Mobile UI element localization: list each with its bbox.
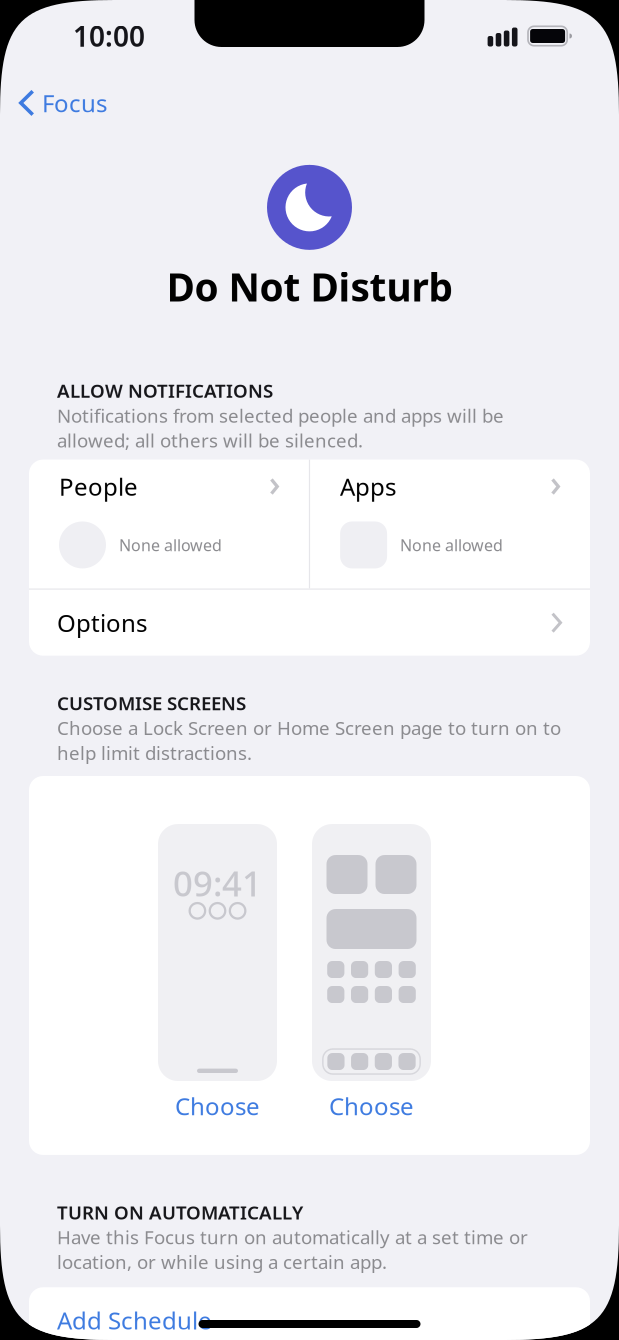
staticText: Choose bbox=[329, 1090, 414, 1122]
staticText: Options bbox=[57, 607, 147, 639]
staticText: Choose a Lock Screen or Home Screen page… bbox=[57, 715, 561, 765]
staticText: 10:00 bbox=[73, 17, 145, 55]
staticText: Notifications from selected people and a… bbox=[57, 403, 504, 453]
button[interactable]: Options bbox=[29, 590, 590, 656]
staticText: None allowed bbox=[400, 534, 503, 555]
staticText: None allowed bbox=[119, 534, 222, 555]
staticText: Apps bbox=[340, 471, 396, 502]
staticText: People bbox=[59, 471, 138, 502]
staticText: Have this Focus turn on automatically at… bbox=[57, 1225, 528, 1274]
button[interactable]: Choose bbox=[329, 1090, 414, 1122]
button[interactable]: People bbox=[29, 460, 309, 588]
staticText: Focus bbox=[42, 87, 107, 119]
staticText: 09:41 bbox=[173, 860, 262, 906]
button[interactable]: Choose bbox=[175, 1090, 260, 1122]
staticText: Choose bbox=[175, 1090, 260, 1122]
staticText: Add Schedule bbox=[57, 1304, 212, 1336]
staticText: ALLOW NOTIFICATIONS bbox=[57, 378, 273, 403]
staticText: Do Not Disturb bbox=[166, 261, 452, 312]
button[interactable]: Apps bbox=[310, 460, 590, 588]
staticText: CUSTOMISE SCREENS bbox=[57, 691, 246, 715]
button[interactable]: Focus bbox=[0, 81, 107, 125]
staticText: TURN ON AUTOMATICALLY bbox=[57, 1200, 303, 1225]
button[interactable]: Add Schedule bbox=[29, 1287, 590, 1340]
